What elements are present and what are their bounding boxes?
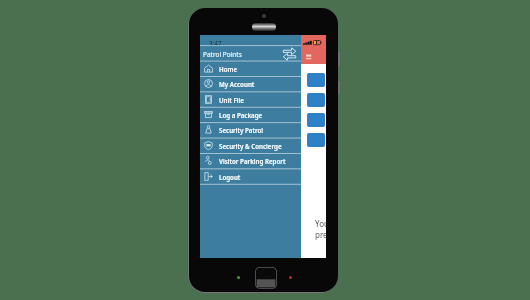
button[interactable]: Unit File [200, 92, 301, 107]
staticText: Security & Concierge [219, 142, 282, 150]
button[interactable] [307, 133, 325, 147]
button[interactable] [307, 73, 325, 87]
staticText: Log a Package [219, 111, 263, 119]
button[interactable]: Visitor Parking Report [200, 153, 301, 168]
staticText: You [315, 218, 329, 229]
button[interactable]: Log a Package [200, 107, 301, 122]
button[interactable]: Security Patrol [200, 122, 301, 137]
staticText: pre [315, 229, 328, 240]
button[interactable]: Open navigation menu [304, 51, 314, 61]
button[interactable] [307, 93, 325, 107]
staticText: 3:47 [209, 39, 222, 48]
staticText: My Account [219, 80, 255, 88]
button[interactable]: Home button [255, 267, 277, 289]
button[interactable]: Security & Concierge [200, 138, 301, 153]
staticText: Security Patrol [219, 126, 264, 134]
staticText: Logout [219, 173, 241, 181]
staticText: Patrol Points [203, 50, 242, 59]
staticText: Home [219, 65, 238, 73]
button[interactable]: Home [200, 61, 301, 76]
staticText: Unit File [219, 96, 244, 104]
staticText: Visitor Parking Report [219, 157, 286, 165]
button[interactable]: Swap [283, 47, 296, 61]
button[interactable]: My Account [200, 76, 301, 91]
button[interactable] [307, 113, 325, 127]
button[interactable]: Logout [200, 169, 301, 184]
